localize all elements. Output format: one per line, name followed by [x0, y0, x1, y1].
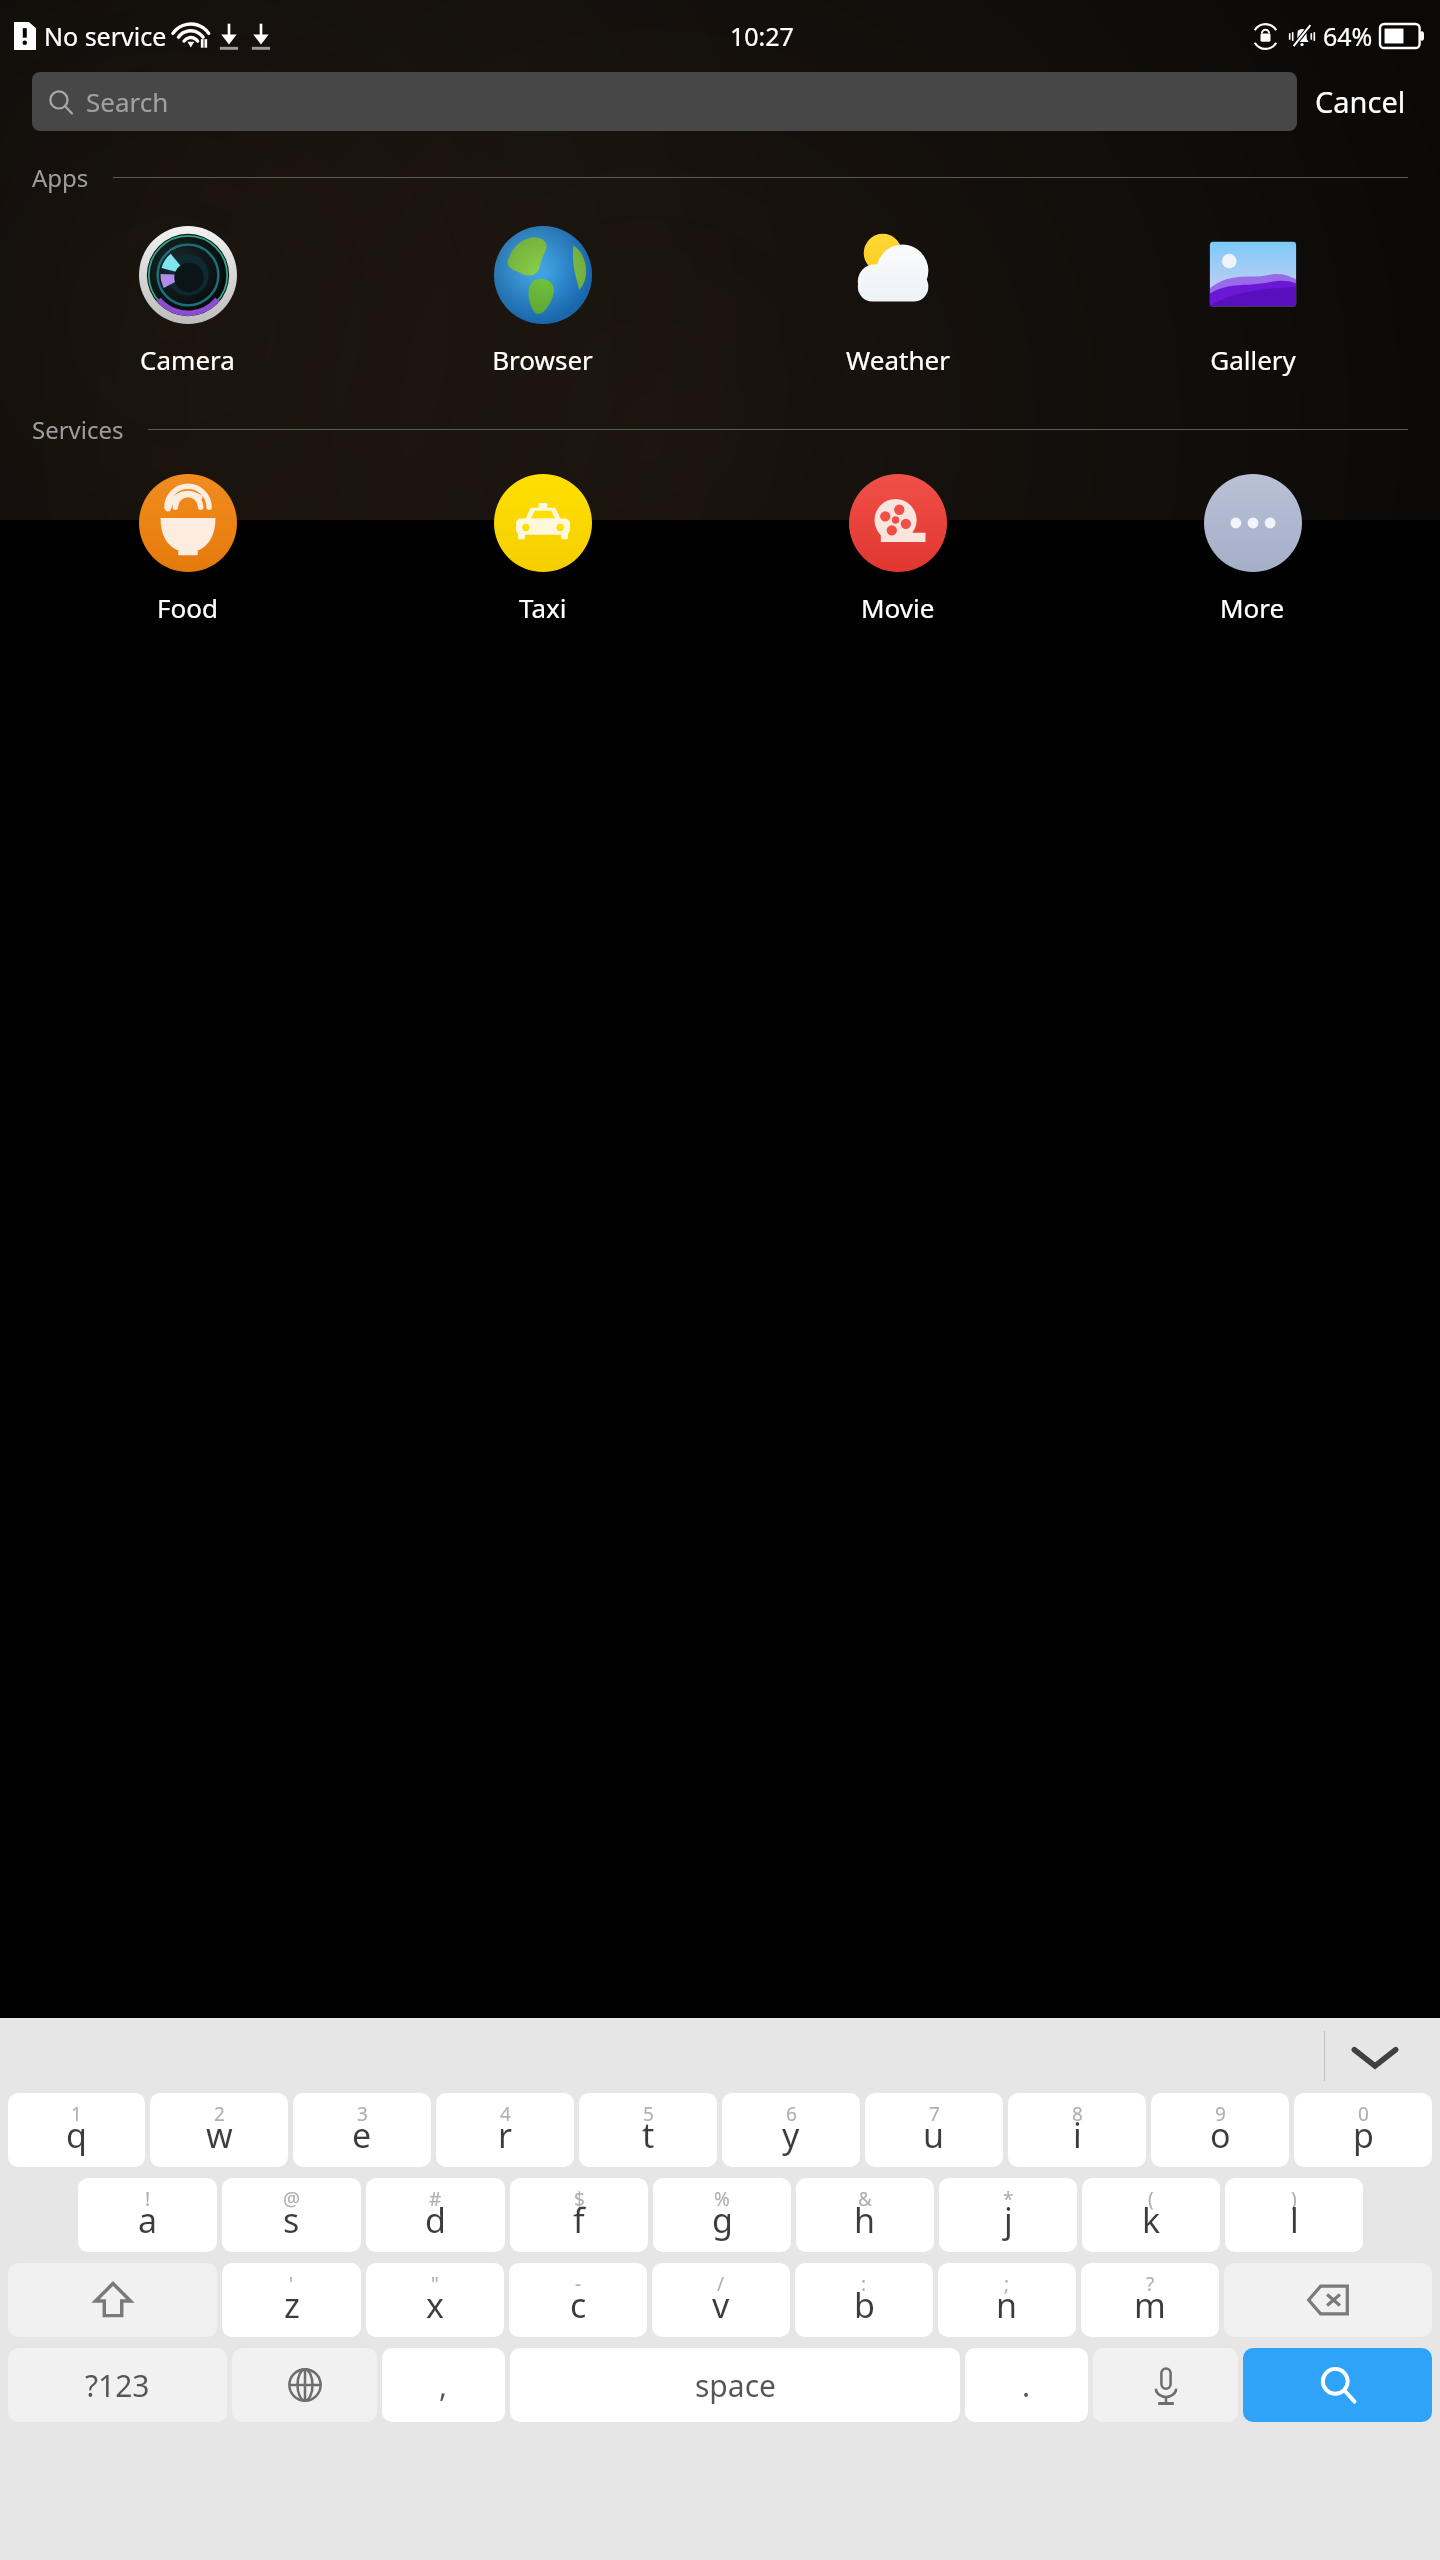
- staticText: -: [575, 2271, 582, 2297]
- staticText: @: [283, 2186, 301, 2212]
- button[interactable]: Movie: [720, 470, 1075, 629]
- button[interactable]: !: [78, 2178, 217, 2252]
- staticText: space: [695, 2365, 776, 2406]
- staticText: j: [1004, 2197, 1013, 2243]
- button[interactable]: @: [222, 2178, 361, 2252]
- button[interactable]: ": [366, 2263, 504, 2337]
- button[interactable]: Camera: [10, 222, 365, 381]
- button[interactable]: space: [510, 2348, 960, 2422]
- staticText: o: [1210, 2112, 1231, 2158]
- button[interactable]: Gallery: [1075, 222, 1430, 381]
- button[interactable]: Change language: [232, 2348, 377, 2422]
- button[interactable]: Weather: [720, 222, 1075, 381]
- button[interactable]: Browser: [365, 222, 720, 381]
- staticText: ): [1291, 2186, 1297, 2212]
- button[interactable]: Search: [32, 72, 1297, 131]
- button[interactable]: Backspace: [1224, 2263, 1432, 2337]
- staticText: w: [206, 2112, 233, 2158]
- button[interactable]: Voice input: [1093, 2348, 1238, 2422]
- button[interactable]: ?123: [8, 2348, 227, 2422]
- staticText: 9: [1215, 2101, 1226, 2127]
- button[interactable]: #: [366, 2178, 505, 2252]
- staticText: ": [431, 2271, 439, 2297]
- staticText: .: [1022, 2365, 1031, 2406]
- staticText: k: [1142, 2197, 1161, 2243]
- button[interactable]: Search: [1243, 2348, 1432, 2422]
- staticText: Movie: [861, 590, 935, 625]
- button[interactable]: 8: [1008, 2093, 1146, 2167]
- staticText: &: [858, 2186, 872, 2212]
- staticText: ,: [439, 2365, 448, 2406]
- staticText: $: [574, 2186, 585, 2212]
- button[interactable]: ): [1225, 2178, 1363, 2252]
- button[interactable]: .: [965, 2348, 1088, 2422]
- staticText: u: [923, 2112, 945, 2158]
- staticText: Search: [86, 84, 169, 119]
- staticText: Camera: [140, 342, 235, 377]
- button[interactable]: 7: [865, 2093, 1003, 2167]
- staticText: b: [854, 2282, 875, 2328]
- button[interactable]: %: [653, 2178, 791, 2252]
- button[interactable]: ;: [938, 2263, 1076, 2337]
- staticText: 2: [214, 2101, 225, 2127]
- staticText: *: [1003, 2186, 1014, 2212]
- staticText: 5: [643, 2101, 654, 2127]
- staticText: t: [642, 2112, 655, 2158]
- button[interactable]: 3: [293, 2093, 431, 2167]
- button[interactable]: Taxi: [365, 470, 720, 629]
- staticText: 4: [500, 2101, 511, 2127]
- button[interactable]: ,: [382, 2348, 505, 2422]
- button[interactable]: (: [1082, 2178, 1220, 2252]
- staticText: 64%: [1323, 19, 1373, 53]
- button[interactable]: &: [796, 2178, 934, 2252]
- button[interactable]: 6: [722, 2093, 860, 2167]
- staticText: g: [712, 2197, 733, 2243]
- staticText: l: [1290, 2197, 1299, 2243]
- staticText: /: [717, 2271, 725, 2297]
- staticText: !: [145, 2186, 151, 2212]
- staticText: #: [429, 2186, 442, 2212]
- staticText: y: [782, 2112, 800, 2158]
- staticText: Gallery: [1210, 342, 1296, 377]
- staticText: Taxi: [519, 590, 567, 625]
- staticText: n: [996, 2282, 1018, 2328]
- staticText: ;: [1004, 2271, 1010, 2297]
- button[interactable]: *: [939, 2178, 1077, 2252]
- button[interactable]: /: [652, 2263, 790, 2337]
- staticText: :: [861, 2271, 867, 2297]
- button[interactable]: Shift: [8, 2263, 217, 2337]
- staticText: a: [138, 2197, 158, 2243]
- staticText: 0: [1358, 2101, 1369, 2127]
- staticText: f: [573, 2197, 585, 2243]
- button[interactable]: Hide keyboard: [1332, 2025, 1418, 2087]
- staticText: 1: [71, 2101, 82, 2127]
- button[interactable]: 4: [436, 2093, 574, 2167]
- button[interactable]: 2: [150, 2093, 288, 2167]
- staticText: i: [1073, 2112, 1082, 2158]
- button[interactable]: 1: [8, 2093, 145, 2167]
- button[interactable]: More: [1075, 470, 1430, 629]
- staticText: More: [1220, 590, 1285, 625]
- button[interactable]: -: [509, 2263, 647, 2337]
- staticText: 10:27: [730, 19, 794, 53]
- button[interactable]: Cancel: [1309, 74, 1412, 129]
- button[interactable]: ': [222, 2263, 361, 2337]
- staticText: q: [66, 2112, 87, 2158]
- staticText: h: [854, 2197, 876, 2243]
- staticText: 7: [929, 2101, 940, 2127]
- staticText: c: [570, 2282, 587, 2328]
- button[interactable]: ?: [1081, 2263, 1219, 2337]
- button[interactable]: 9: [1151, 2093, 1289, 2167]
- staticText: r: [498, 2112, 513, 2158]
- staticText: 3: [357, 2101, 368, 2127]
- button[interactable]: $: [510, 2178, 648, 2252]
- button[interactable]: Food: [10, 470, 365, 629]
- staticText: No service: [44, 19, 167, 53]
- staticText: 8: [1072, 2101, 1083, 2127]
- staticText: m: [1134, 2282, 1166, 2328]
- button[interactable]: :: [795, 2263, 933, 2337]
- staticText: e: [352, 2112, 372, 2158]
- button[interactable]: 5: [579, 2093, 717, 2167]
- staticText: Food: [157, 590, 218, 625]
- button[interactable]: 0: [1294, 2093, 1432, 2167]
